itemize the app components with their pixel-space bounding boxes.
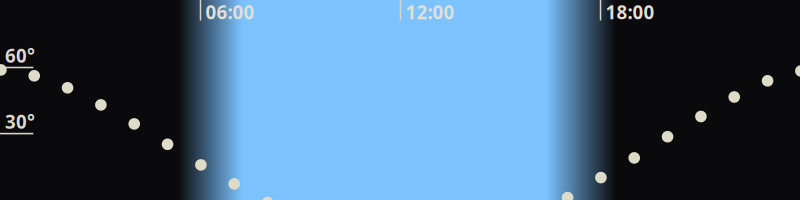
staticText: 12:00 <box>405 0 454 24</box>
staticText: 18:00 <box>605 0 654 24</box>
staticText: 06:00 <box>205 0 254 24</box>
staticText: 60° <box>5 43 35 68</box>
staticText: 30° <box>5 109 35 134</box>
